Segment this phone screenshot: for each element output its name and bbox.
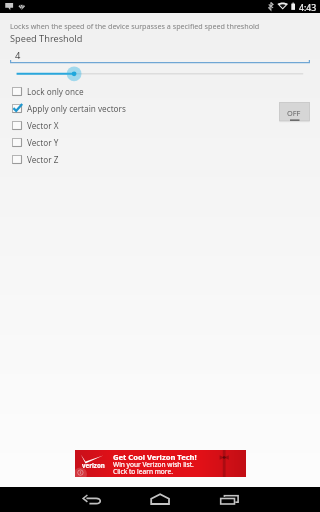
staticText: Speed Threshold <box>10 32 83 45</box>
staticText: Vector Y <box>27 137 59 148</box>
staticText: Lock only once <box>27 86 84 97</box>
staticText: Click to learn more. <box>113 467 173 476</box>
button[interactable]: verizon <box>75 450 246 477</box>
button[interactable]: Vector Y <box>0 134 320 151</box>
staticText: 4:43 <box>299 2 317 14</box>
button[interactable]: Home <box>136 487 184 512</box>
button[interactable]: Toggle off <box>279 102 310 123</box>
staticText: Apply only certain vectors <box>27 103 126 114</box>
staticText: Vector Z <box>27 154 59 165</box>
staticText: Win your Verizon wish list. <box>113 460 194 469</box>
staticText: verizon <box>82 461 105 469</box>
button[interactable]: Vector X <box>0 117 320 134</box>
staticText: Vector X <box>27 120 59 131</box>
staticText: Locks when the speed of the device surpa… <box>10 21 260 31</box>
staticText: OFF <box>287 108 301 118</box>
button[interactable]: Back <box>68 487 116 512</box>
button[interactable]: Lock only once <box>0 83 320 100</box>
button[interactable]: 4 <box>10 46 310 64</box>
button[interactable]: Recent apps <box>205 487 253 512</box>
staticText: Get Cool Verizon Tech! <box>113 452 197 462</box>
staticText: 4 <box>15 49 21 62</box>
button[interactable]: Speed threshold slider <box>0 66 320 82</box>
button[interactable]: Vector Z <box>0 151 320 168</box>
button[interactable]: Apply only certain vectors <box>0 100 320 117</box>
